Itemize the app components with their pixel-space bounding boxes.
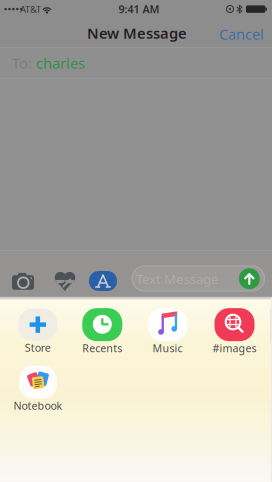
button[interactable]: iMessage Apps xyxy=(89,271,117,291)
button[interactable]: Notebook xyxy=(13,366,62,413)
staticText: AT&T xyxy=(20,3,41,15)
staticText: charles xyxy=(36,53,85,73)
staticText: Notebook xyxy=(13,399,62,413)
button[interactable]: Cancel xyxy=(219,24,264,44)
button[interactable]: Send xyxy=(239,268,260,289)
staticText: Store xyxy=(25,341,51,355)
staticText: #images xyxy=(212,341,256,355)
staticText: New Message xyxy=(87,23,187,43)
button[interactable]: Text Message xyxy=(132,266,265,291)
button[interactable]: Store xyxy=(18,309,57,355)
button[interactable]: To: charles xyxy=(0,48,272,78)
button[interactable]: #images xyxy=(212,308,256,355)
button[interactable]: Camera xyxy=(12,272,36,291)
button[interactable]: Music xyxy=(148,308,188,355)
button[interactable]: Digital Touch xyxy=(53,270,76,291)
button[interactable]: Recents xyxy=(82,308,122,355)
staticText: To: xyxy=(12,53,32,73)
staticText: Music xyxy=(153,341,183,355)
staticText: Cancel xyxy=(219,24,264,44)
staticText: Text Message xyxy=(136,270,219,288)
staticText: Recents xyxy=(82,341,122,355)
staticText: 9:41 AM xyxy=(118,2,159,16)
